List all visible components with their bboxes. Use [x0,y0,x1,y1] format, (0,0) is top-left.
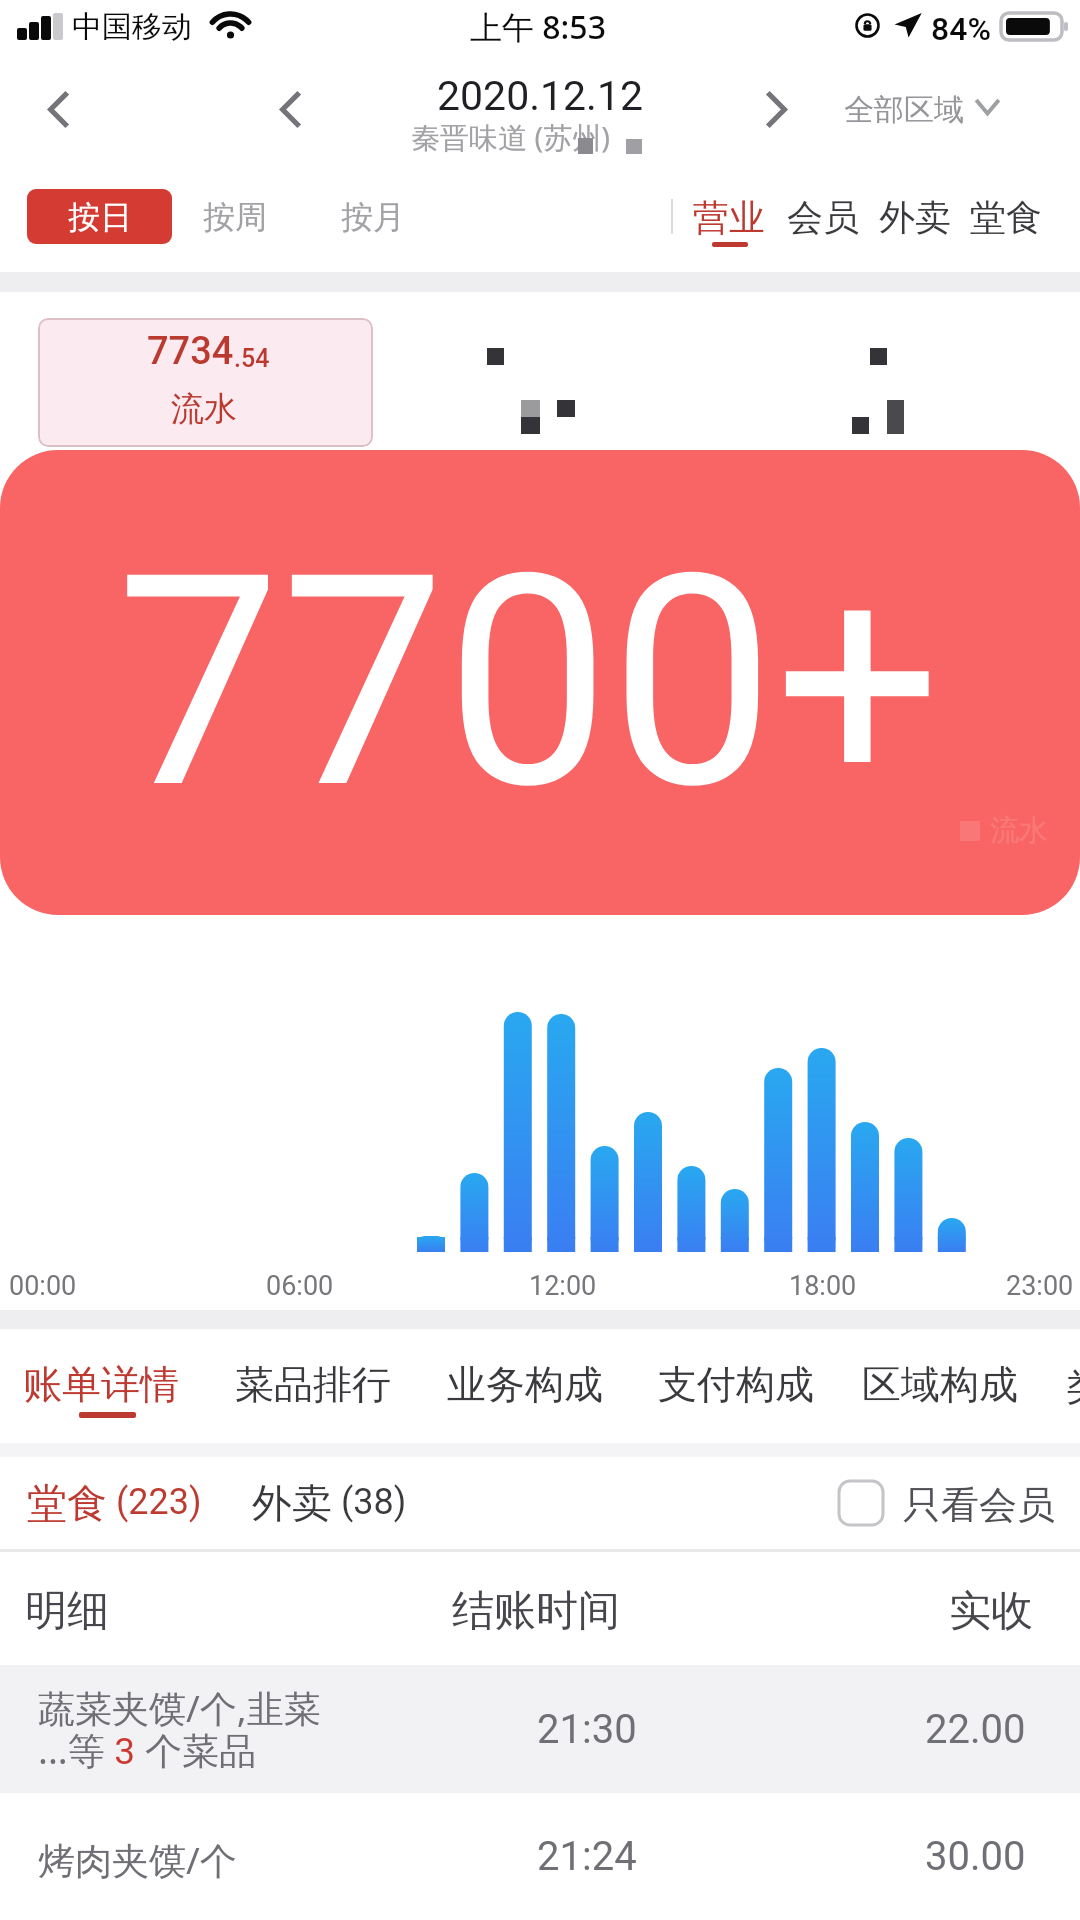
staticText: 结账时间 [452,1585,620,1638]
staticText: 烤肉夹馍/个 [38,1834,237,1885]
staticText: 账单详情 [23,1360,179,1409]
staticText: ...等 [38,1724,105,1775]
staticText: 流水 [171,388,237,430]
button[interactable]: 外卖 [874,191,956,249]
staticText: 84% [931,10,991,48]
button[interactable]: 烤肉夹馍/个 [0,1793,1080,1920]
button[interactable]: 全部区域 [830,80,1020,154]
button[interactable]: 账单详情 [23,1345,188,1425]
staticText: 7734 [147,329,234,374]
staticText: 流水 [990,812,1048,849]
staticText: 菜品排行 [235,1360,391,1409]
staticText: .54 [234,344,270,373]
button[interactable]: Back [21,72,95,146]
staticText: 12:00 [529,1270,597,1302]
button[interactable]: Previous day [253,72,327,146]
staticText: 会员 [787,195,859,240]
button[interactable]: 区域构成 [862,1345,1027,1425]
staticText: 按月 [341,197,405,237]
button[interactable]: 蔬菜夹馍/个,韭菜 [0,1665,1080,1793]
button[interactable]: 会员 [782,191,864,249]
staticText: 00:00 [9,1270,77,1302]
button[interactable]: 7734 [38,318,373,447]
staticText: 中国移动 [72,8,192,46]
button[interactable]: 按月 [328,189,418,244]
staticText: 21:24 [537,1833,637,1880]
staticText: 区域构成 [862,1360,1018,1409]
button[interactable]: 堂食 [965,191,1047,249]
staticText: 蔬菜夹馍/个,韭菜 [38,1682,321,1733]
staticText: 18:00 [789,1270,857,1302]
button[interactable]: 业务构成 [447,1345,612,1425]
button[interactable]: 流水 [0,450,1080,915]
button[interactable]: 菜品排行 [235,1345,400,1425]
staticText: 22.00 [925,1706,1026,1753]
button[interactable]: 按周 [190,189,280,244]
staticText: 明细 [25,1585,109,1638]
staticText: (223) [107,1481,202,1523]
staticText: 只看会员 [903,1481,1055,1529]
staticText: 30.00 [925,1833,1026,1880]
button[interactable]: 堂食 [27,1457,232,1549]
staticText: (38) [332,1481,407,1523]
staticText: 支付构成 [658,1360,814,1409]
staticText: 堂食 [27,1478,107,1528]
button[interactable]: 外卖 [252,1457,442,1549]
staticText: 全部区域 [844,91,964,129]
staticText: 21:30 [537,1706,637,1753]
staticText: 按日 [68,197,132,237]
staticText: 按周 [203,197,267,237]
staticText: 06:00 [266,1270,334,1302]
button[interactable]: 按日 [27,189,172,244]
button[interactable]: 只看会员 [839,1457,1055,1549]
staticText: 7700+ [116,511,941,854]
staticText: 堂食 [970,195,1042,240]
staticText: 2020.12.12 [437,72,643,120]
staticText: 外卖 [879,195,951,240]
staticText: 营业 [693,195,765,240]
button[interactable]: 支付构成 [658,1345,823,1425]
staticText: 个菜品 [145,1728,256,1775]
staticText: 秦晋味道 (苏州) [411,117,610,157]
button[interactable]: 营业 [688,191,770,253]
button[interactable]: Next day [740,72,814,146]
staticText: 实收 [949,1585,1033,1638]
staticText: 上午 8:53 [470,5,606,49]
staticText: 业务构成 [447,1360,603,1409]
staticText: 外卖 [252,1478,332,1528]
staticText: 3 [105,1730,145,1773]
staticText: 23:00 [1006,1270,1074,1302]
staticText: 类 [1066,1362,1080,1411]
